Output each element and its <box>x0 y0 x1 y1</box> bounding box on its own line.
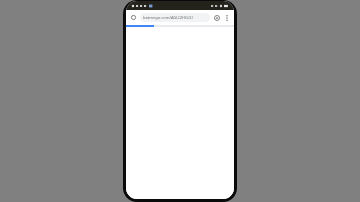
staticText: batmngo.com/AGLI2HG/2/ <box>143 15 194 20</box>
button[interactable]: batmngo.com/AGLI2HG/2/ <box>140 13 210 22</box>
button[interactable]: Share <box>212 13 221 22</box>
button[interactable]: More options <box>222 13 231 22</box>
button[interactable]: Site information <box>129 13 138 22</box>
